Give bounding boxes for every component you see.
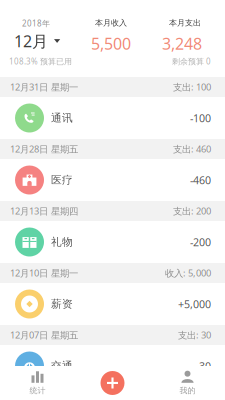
button[interactable]: 统计 — [0, 366, 75, 400]
staticText: 我的 — [179, 386, 195, 396]
staticText: 交通 — [51, 359, 73, 372]
button[interactable]: 交通 — [0, 345, 225, 387]
button[interactable]: 薪资 — [0, 283, 225, 325]
staticText: -200 — [190, 235, 211, 249]
staticText: 12月13日 星期四 — [10, 205, 78, 217]
staticText: 收入: 5,000 — [165, 267, 211, 279]
staticText: 12月28日 星期五 — [10, 143, 78, 155]
staticText: 支出: 30 — [178, 329, 211, 341]
staticText: 3,248 — [162, 33, 202, 54]
button[interactable]: 我的 — [150, 366, 225, 400]
staticText: 礼物 — [51, 235, 73, 248]
staticText: -30 — [196, 359, 211, 373]
staticText: 薪资 — [51, 297, 73, 310]
staticText: 12月07日 星期五 — [10, 329, 78, 341]
staticText: 支出: 200 — [173, 205, 211, 217]
button[interactable]: 12月 — [14, 31, 74, 51]
staticText: -460 — [190, 173, 211, 187]
staticText: 支出: 100 — [173, 81, 211, 93]
staticText: 本月支出 — [169, 18, 201, 28]
button[interactable]: 通讯 — [0, 97, 225, 139]
staticText: 108.3% 预算已用 — [9, 56, 72, 67]
button[interactable]: 医疗 — [0, 159, 225, 201]
staticText: -100 — [190, 111, 211, 125]
staticText: 本月收入 — [95, 18, 127, 28]
staticText: 医疗 — [51, 173, 73, 186]
staticText: 剩余预算 0 — [172, 56, 211, 67]
button[interactable]: 礼物 — [0, 221, 225, 263]
staticText: 通讯 — [51, 111, 73, 124]
staticText: +5,000 — [178, 297, 211, 311]
button[interactable]: Add transaction — [75, 366, 150, 400]
staticText: 2018年 — [22, 18, 50, 29]
staticText: 统计 — [29, 386, 45, 396]
staticText: 12月10日 星期一 — [10, 267, 78, 279]
staticText: 12月31日 星期一 — [10, 81, 78, 93]
staticText: 5,500 — [91, 33, 131, 54]
staticText: 12月 — [14, 30, 48, 52]
staticText: 支出: 460 — [173, 143, 211, 155]
